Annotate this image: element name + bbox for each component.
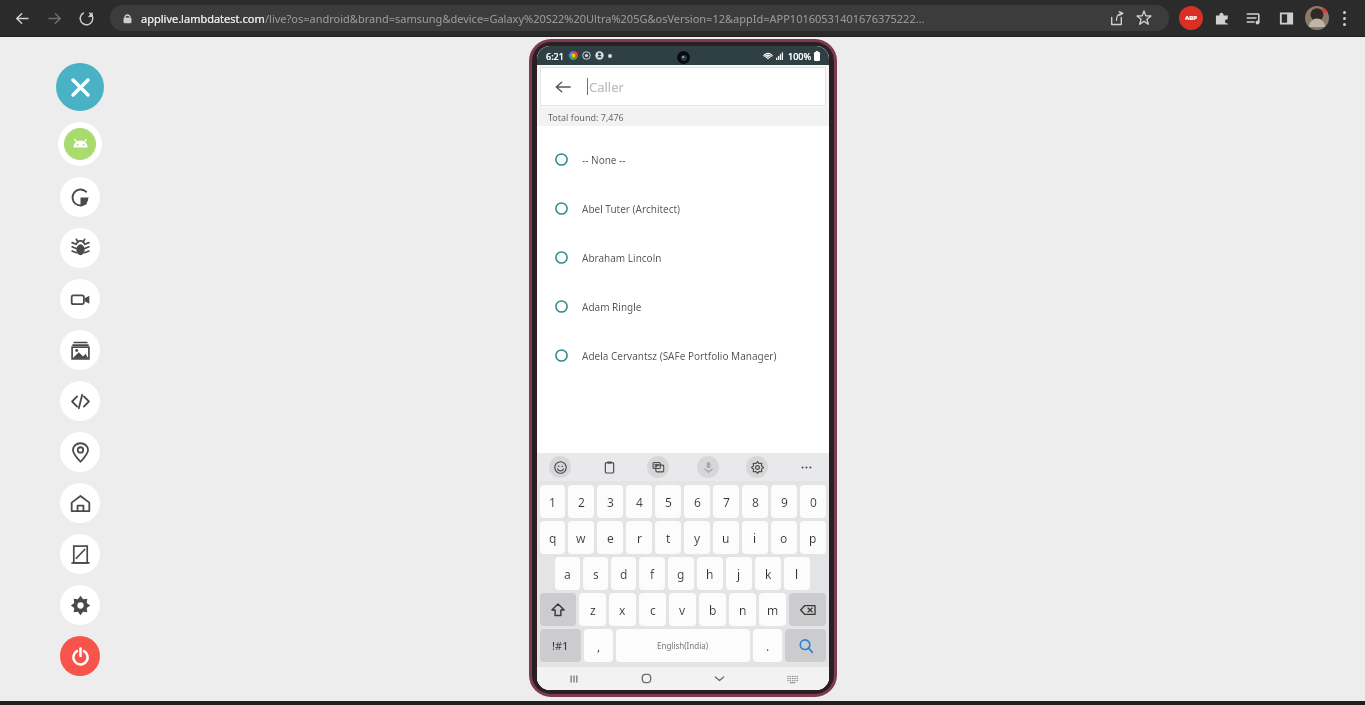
button[interactable]: GPS location <box>60 432 100 472</box>
button[interactable]: d <box>611 557 636 590</box>
staticText: -- None -- <box>582 153 626 167</box>
button[interactable]: Back <box>8 4 36 32</box>
button[interactable]: applive.lambdatest.com <box>110 5 1169 31</box>
button[interactable]: c <box>639 593 666 626</box>
staticText: Abraham Lincoln <box>582 251 662 265</box>
button[interactable]: Report bug <box>60 228 100 268</box>
button[interactable]: Voice input <box>697 456 719 478</box>
staticText: ABP <box>1185 14 1197 22</box>
button[interactable]: 1 <box>540 485 565 518</box>
button[interactable]: r <box>626 521 652 554</box>
button[interactable]: Backspace <box>789 593 826 626</box>
button[interactable]: Extensions <box>1209 5 1235 31</box>
button[interactable]: a <box>555 557 580 590</box>
button[interactable]: s <box>583 557 608 590</box>
staticText: 9 <box>781 494 788 510</box>
button[interactable]: Recent apps <box>537 667 610 690</box>
button[interactable]: Side panel <box>1273 5 1299 31</box>
button[interactable]: t <box>655 521 681 554</box>
button[interactable]: English(India) <box>616 629 750 662</box>
button[interactable]: Adela Cervantsz (SAFe Portfolio Manager) <box>537 331 829 380</box>
button[interactable]: Abraham Lincoln <box>537 233 829 282</box>
button[interactable]: Settings <box>60 585 100 625</box>
button[interactable]: q <box>540 521 565 554</box>
button[interactable]: Search <box>785 629 826 662</box>
staticText: w <box>576 530 586 546</box>
button[interactable]: End session <box>60 636 100 676</box>
button[interactable]: Home <box>610 667 683 690</box>
button[interactable]: f <box>639 557 665 590</box>
button[interactable]: . <box>753 629 782 662</box>
button[interactable]: More options <box>1331 5 1357 31</box>
button[interactable]: Profile <box>1305 6 1329 30</box>
button[interactable]: Back <box>540 67 826 106</box>
staticText: n <box>739 602 747 618</box>
button[interactable]: z <box>579 593 606 626</box>
button[interactable]: 8 <box>742 485 768 518</box>
button[interactable]: Reload <box>72 4 100 32</box>
button[interactable]: u <box>713 521 739 554</box>
staticText: p <box>809 530 817 546</box>
button[interactable]: y <box>684 521 710 554</box>
button[interactable]: 7 <box>713 485 739 518</box>
button[interactable]: Hide keyboard <box>683 667 756 690</box>
staticText: applive.lambdatest.com <box>141 11 265 26</box>
button[interactable]: Shift <box>540 593 576 626</box>
button[interactable]: Switch keyboard <box>756 667 829 690</box>
button[interactable]: Android <box>58 122 102 166</box>
button[interactable]: g <box>668 557 694 590</box>
button[interactable]: Screenshot <box>60 330 100 370</box>
button[interactable]: Share <box>1103 5 1129 31</box>
button[interactable]: m <box>759 593 786 626</box>
button[interactable]: Clipboard <box>598 456 620 478</box>
button[interactable]: p <box>800 521 826 554</box>
button[interactable]: Reading list <box>1241 5 1267 31</box>
button[interactable]: o <box>771 521 797 554</box>
button[interactable]: -- None -- <box>537 135 829 184</box>
staticText: j <box>737 566 741 582</box>
staticText: Caller <box>589 78 624 96</box>
button[interactable]: Network throttling <box>60 534 100 574</box>
button[interactable]: x <box>609 593 636 626</box>
button[interactable]: Adam Ringle <box>537 282 829 331</box>
button[interactable]: 3 <box>597 485 623 518</box>
button[interactable]: h <box>697 557 723 590</box>
button[interactable]: b <box>699 593 726 626</box>
button[interactable]: 0 <box>800 485 826 518</box>
button[interactable]: Record video <box>60 279 100 319</box>
button[interactable]: 5 <box>655 485 681 518</box>
button[interactable]: Forward <box>40 4 68 32</box>
button[interactable]: , <box>584 629 613 662</box>
button[interactable]: i <box>742 521 768 554</box>
button[interactable]: Bookmark <box>1131 5 1157 31</box>
button[interactable]: Emoji <box>549 456 571 478</box>
button[interactable]: Adblock Plus <box>1179 6 1203 30</box>
button[interactable]: 9 <box>771 485 797 518</box>
button[interactable]: Stickers <box>647 456 669 478</box>
button[interactable]: Home <box>60 483 100 523</box>
staticText: v <box>679 602 686 618</box>
button[interactable]: Abel Tuter (Architect) <box>537 184 829 233</box>
button[interactable]: Back <box>552 76 574 98</box>
button[interactable]: Rotate device <box>60 177 100 217</box>
button[interactable]: !#1 <box>540 629 581 662</box>
button[interactable]: Stop session <box>56 63 104 111</box>
button[interactable]: More keyboard options <box>795 456 817 478</box>
button[interactable]: k <box>755 557 781 590</box>
button[interactable]: 6 <box>684 485 710 518</box>
button[interactable]: 2 <box>568 485 594 518</box>
button[interactable]: Keyboard settings <box>746 456 768 478</box>
button[interactable]: v <box>669 593 696 626</box>
button[interactable]: l <box>784 557 810 590</box>
staticText: i <box>753 530 757 546</box>
button[interactable]: n <box>729 593 756 626</box>
button[interactable]: 4 <box>626 485 652 518</box>
button[interactable]: e <box>597 521 623 554</box>
staticText: q <box>549 530 557 546</box>
button[interactable]: Developer tools <box>60 381 100 421</box>
staticText: 100% <box>788 50 812 62</box>
button[interactable]: w <box>568 521 594 554</box>
staticText: 1 <box>549 494 556 510</box>
button[interactable]: j <box>726 557 752 590</box>
staticText: !#1 <box>552 638 569 653</box>
